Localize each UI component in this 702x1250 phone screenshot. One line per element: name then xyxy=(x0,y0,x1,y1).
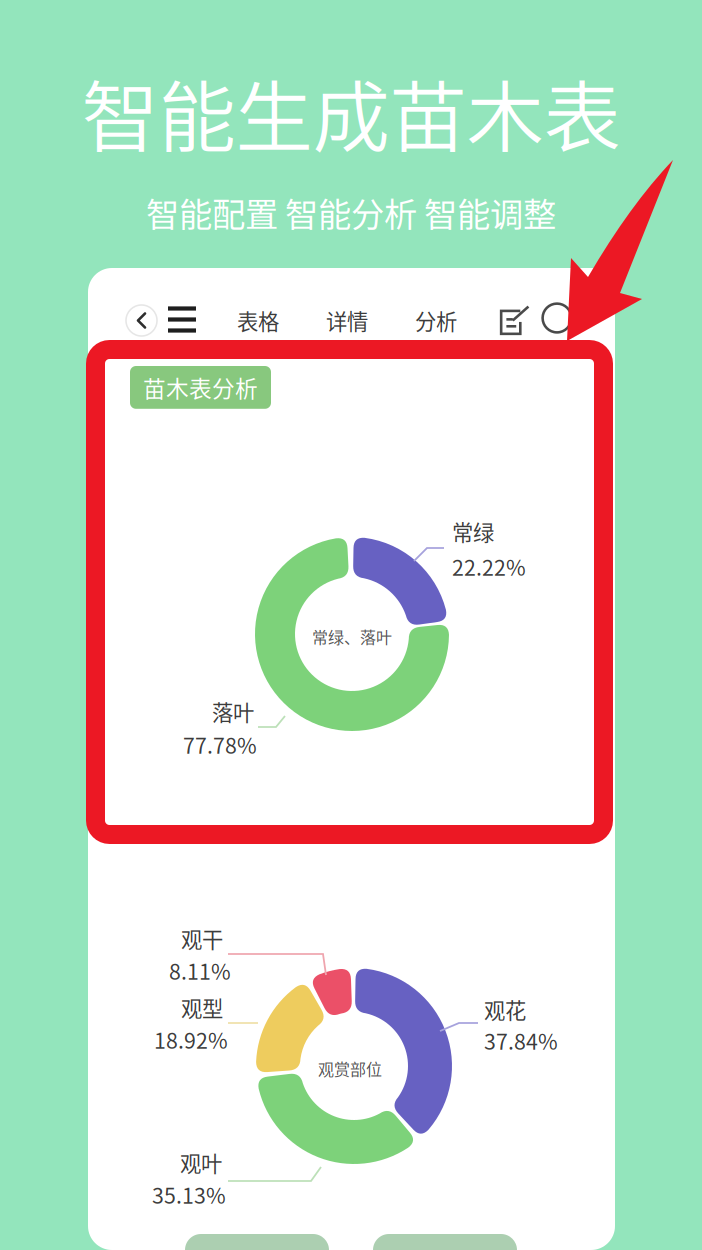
button[interactable]: 表格 xyxy=(237,305,279,336)
staticText: 观花 xyxy=(484,994,526,1025)
staticText: 智能配置 智能分析 智能调整 xyxy=(146,188,556,236)
staticText: 18.92% xyxy=(154,1024,228,1055)
button[interactable]: Menu xyxy=(168,306,196,333)
staticText: 77.78% xyxy=(183,729,257,760)
staticText: 观干 xyxy=(181,923,223,954)
staticText: 37.84% xyxy=(484,1025,558,1056)
button[interactable]: Back xyxy=(126,305,157,336)
staticText: 详情 xyxy=(326,305,368,336)
staticText: 落叶 xyxy=(212,696,254,727)
button[interactable]: Share xyxy=(373,1234,517,1250)
button[interactable]: 分析 xyxy=(415,305,457,336)
button[interactable]: Edit xyxy=(500,306,529,335)
staticText: 常绿、落叶 xyxy=(312,625,392,648)
button[interactable]: 详情 xyxy=(326,305,368,336)
staticText: 观赏部位 xyxy=(318,1057,382,1080)
staticText: 分析 xyxy=(415,305,457,336)
staticText: 8.11% xyxy=(169,955,231,986)
staticText: 表格 xyxy=(237,305,279,336)
button[interactable]: Search xyxy=(540,301,576,337)
staticText: 观叶 xyxy=(180,1147,222,1178)
staticText: 观型 xyxy=(181,992,223,1023)
staticText: 智能生成苗木表 xyxy=(81,56,620,168)
staticText: 常绿 xyxy=(452,516,494,547)
staticText: 苗木表分析 xyxy=(143,371,258,404)
staticText: 22.22% xyxy=(452,551,526,582)
staticText: 35.13% xyxy=(152,1179,226,1210)
button[interactable]: Export xyxy=(185,1234,329,1250)
